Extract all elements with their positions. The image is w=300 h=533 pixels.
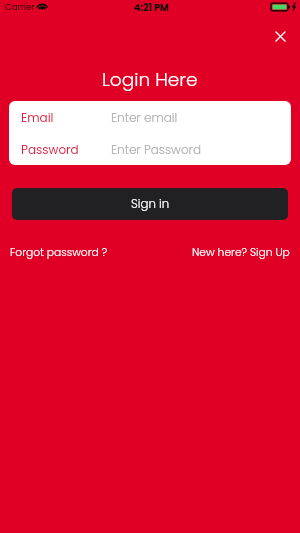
staticText: New here? Sign Up: [192, 245, 290, 260]
staticText: Enter Password: [111, 141, 202, 158]
staticText: Carrier: [5, 1, 35, 13]
button[interactable]: Email: [9, 101, 291, 133]
staticText: Enter email: [111, 109, 178, 126]
staticText: Sign in: [131, 196, 170, 213]
staticText: Email: [21, 109, 54, 126]
staticText: Password: [21, 141, 79, 158]
button[interactable]: New here? Sign Up: [192, 245, 290, 260]
staticText: 4:21 PM: [134, 1, 169, 14]
staticText: Forgot password ?: [10, 245, 108, 260]
button[interactable]: Sign in: [12, 188, 288, 220]
button[interactable]: Password: [9, 133, 291, 165]
button[interactable]: Close: [268, 24, 292, 48]
button[interactable]: Forgot password ?: [10, 245, 108, 260]
staticText: Login Here: [102, 67, 198, 93]
